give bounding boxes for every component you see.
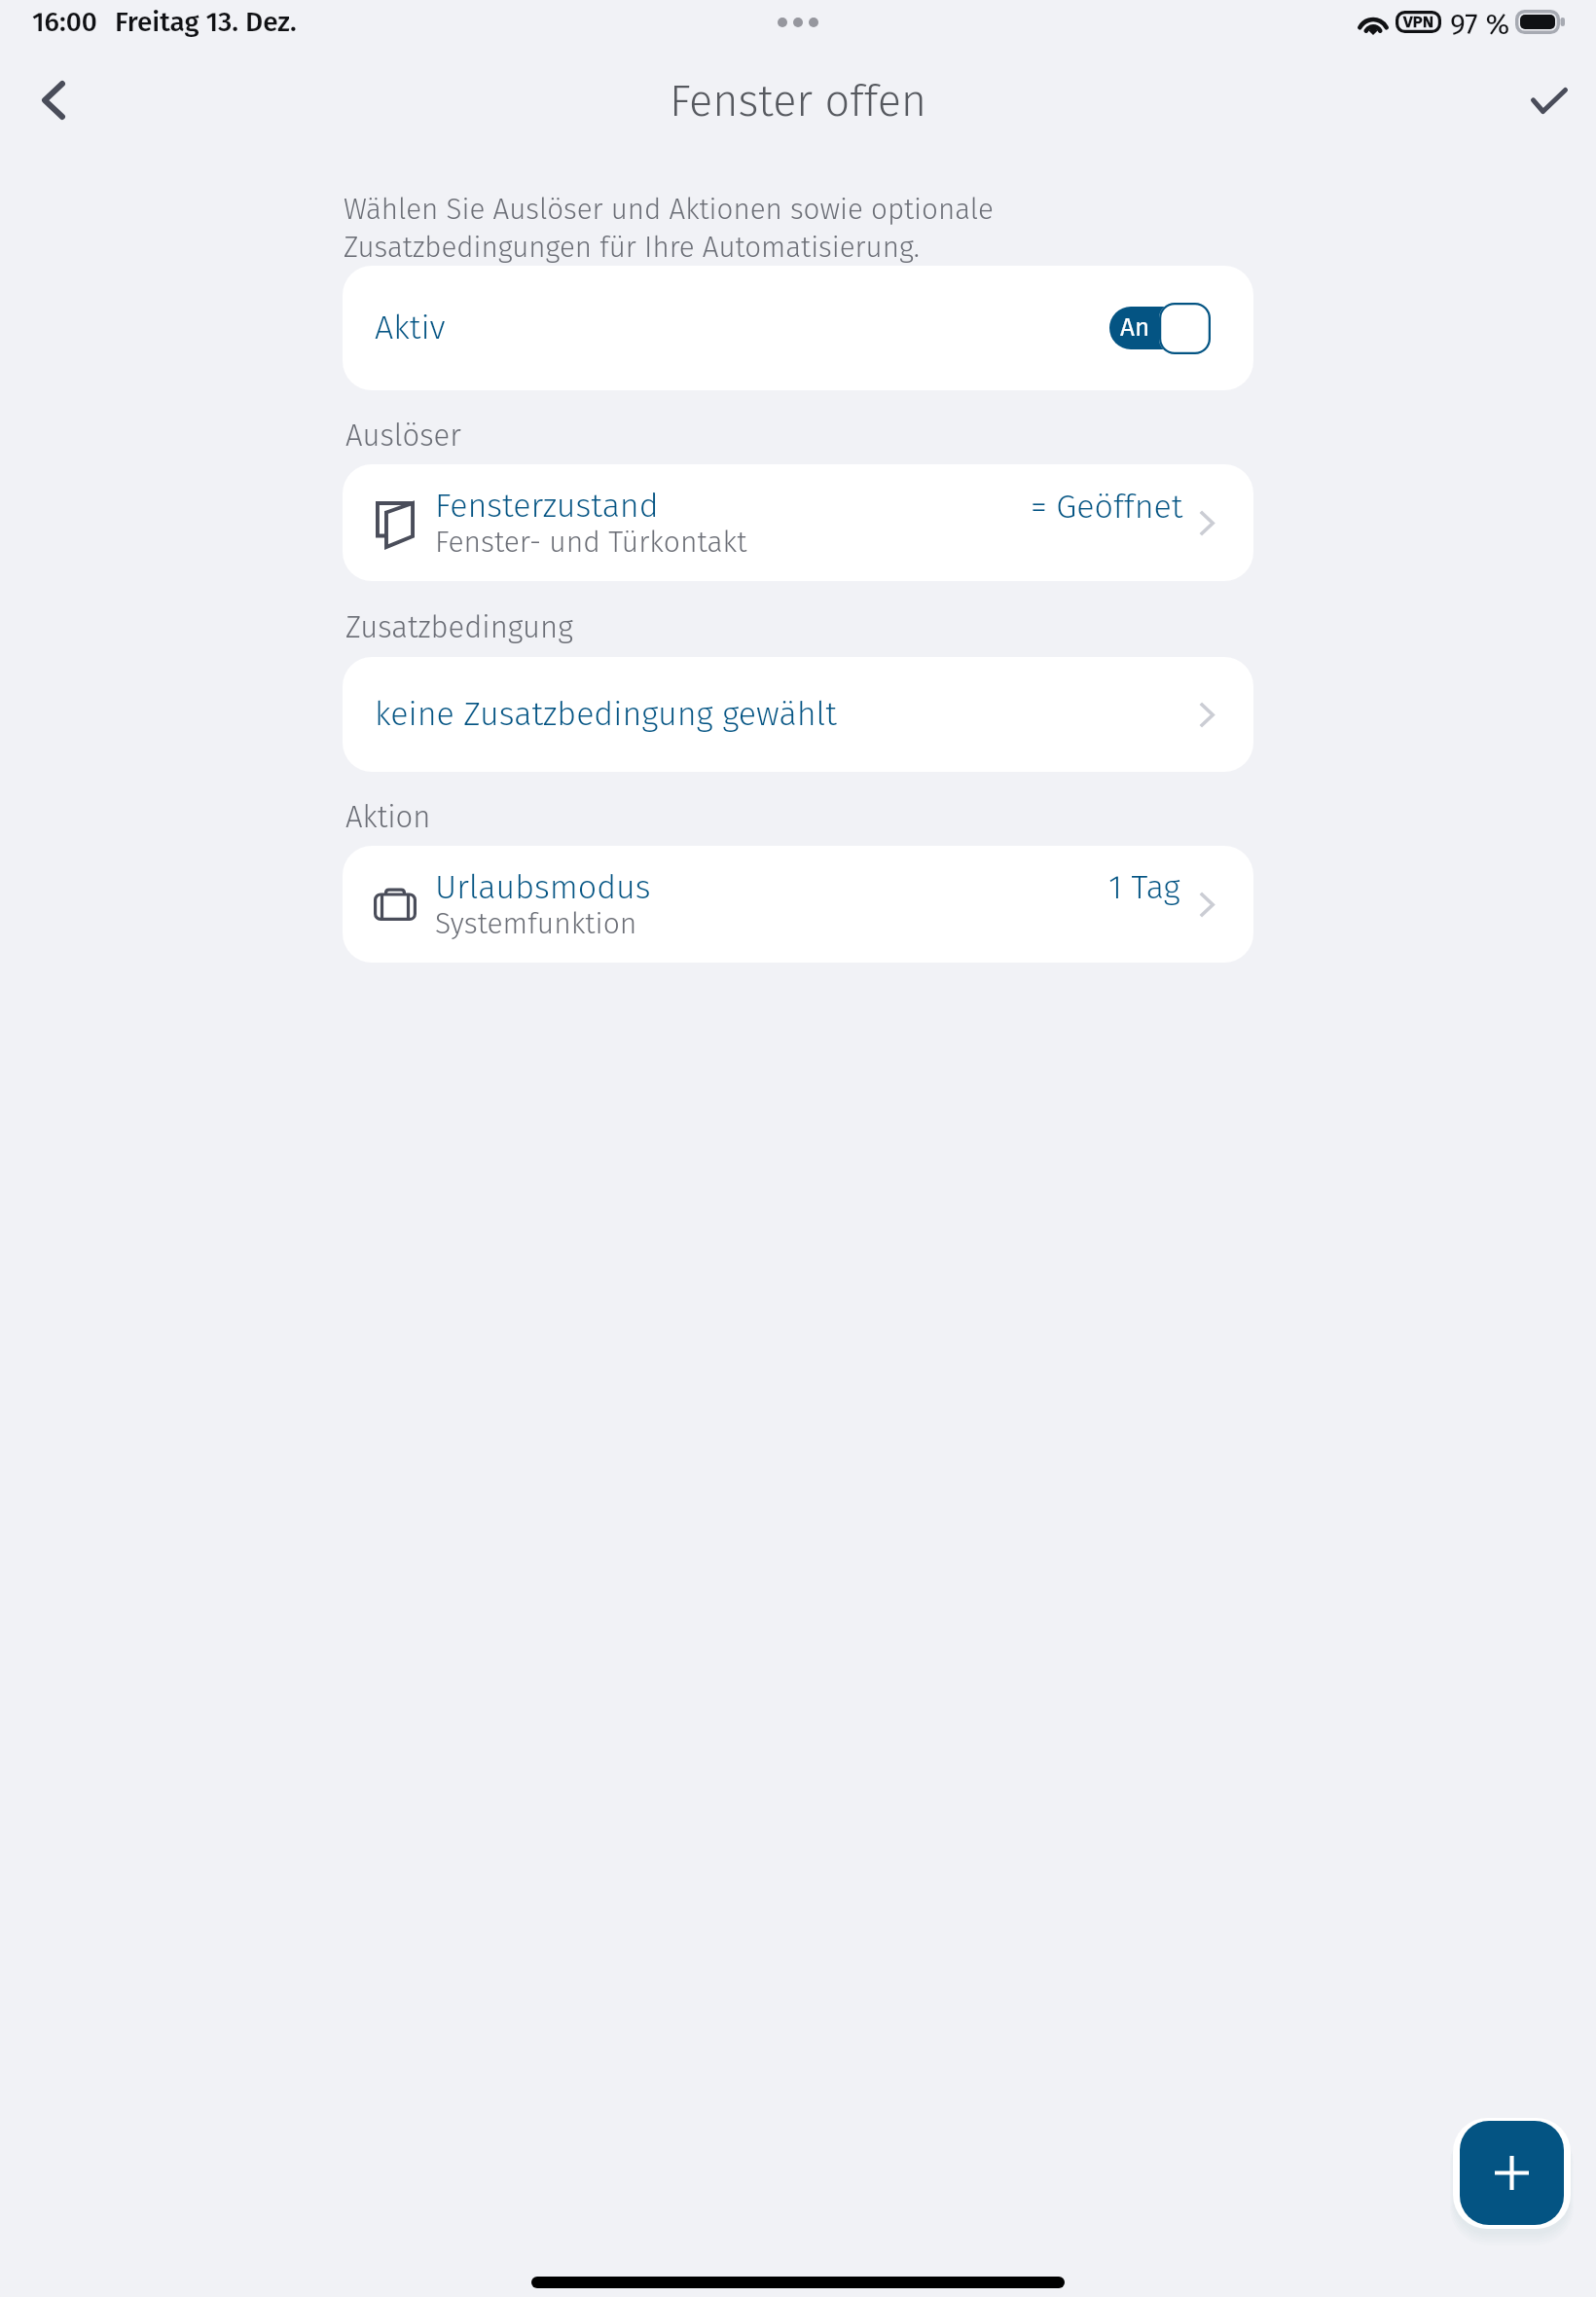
button[interactable]: Aktiv an xyxy=(1109,301,1211,355)
staticText: Zusatzbedingung xyxy=(345,609,573,645)
staticText: Urlaubsmodus xyxy=(435,867,651,907)
button[interactable]: Urlaubsmodus xyxy=(343,846,1253,963)
staticText: VPN xyxy=(1403,12,1434,31)
staticText: Fenster offen xyxy=(670,75,927,128)
button[interactable]: Back xyxy=(10,61,97,139)
button[interactable]: keine Zusatzbedingung gewählt xyxy=(343,657,1253,772)
staticText: Fensterzustand xyxy=(435,486,659,526)
staticText: 97 % xyxy=(1450,7,1510,42)
staticText: Aktion xyxy=(345,799,431,835)
staticText: 1 Tag xyxy=(1108,867,1180,907)
button[interactable]: Confirm xyxy=(1510,61,1588,139)
staticText: Wählen Sie Auslöser und Aktionen sowie o… xyxy=(344,192,994,265)
button[interactable]: Fensterzustand xyxy=(343,464,1253,581)
staticText: Aktiv xyxy=(375,308,446,347)
staticText: Auslöser xyxy=(345,418,461,454)
button[interactable]: Aktiv xyxy=(343,266,1253,390)
staticText: Freitag 13. Dez. xyxy=(115,6,297,39)
staticText: keine Zusatzbedingung gewählt xyxy=(375,694,837,734)
staticText: An xyxy=(1120,312,1150,343)
button[interactable]: Add xyxy=(1460,2121,1564,2225)
staticText: 16:00 xyxy=(32,6,97,39)
staticText: = Geöffnet xyxy=(1031,487,1183,527)
staticText: Fenster- und Türkontakt xyxy=(435,525,747,560)
staticText: Systemfunktion xyxy=(435,906,637,941)
